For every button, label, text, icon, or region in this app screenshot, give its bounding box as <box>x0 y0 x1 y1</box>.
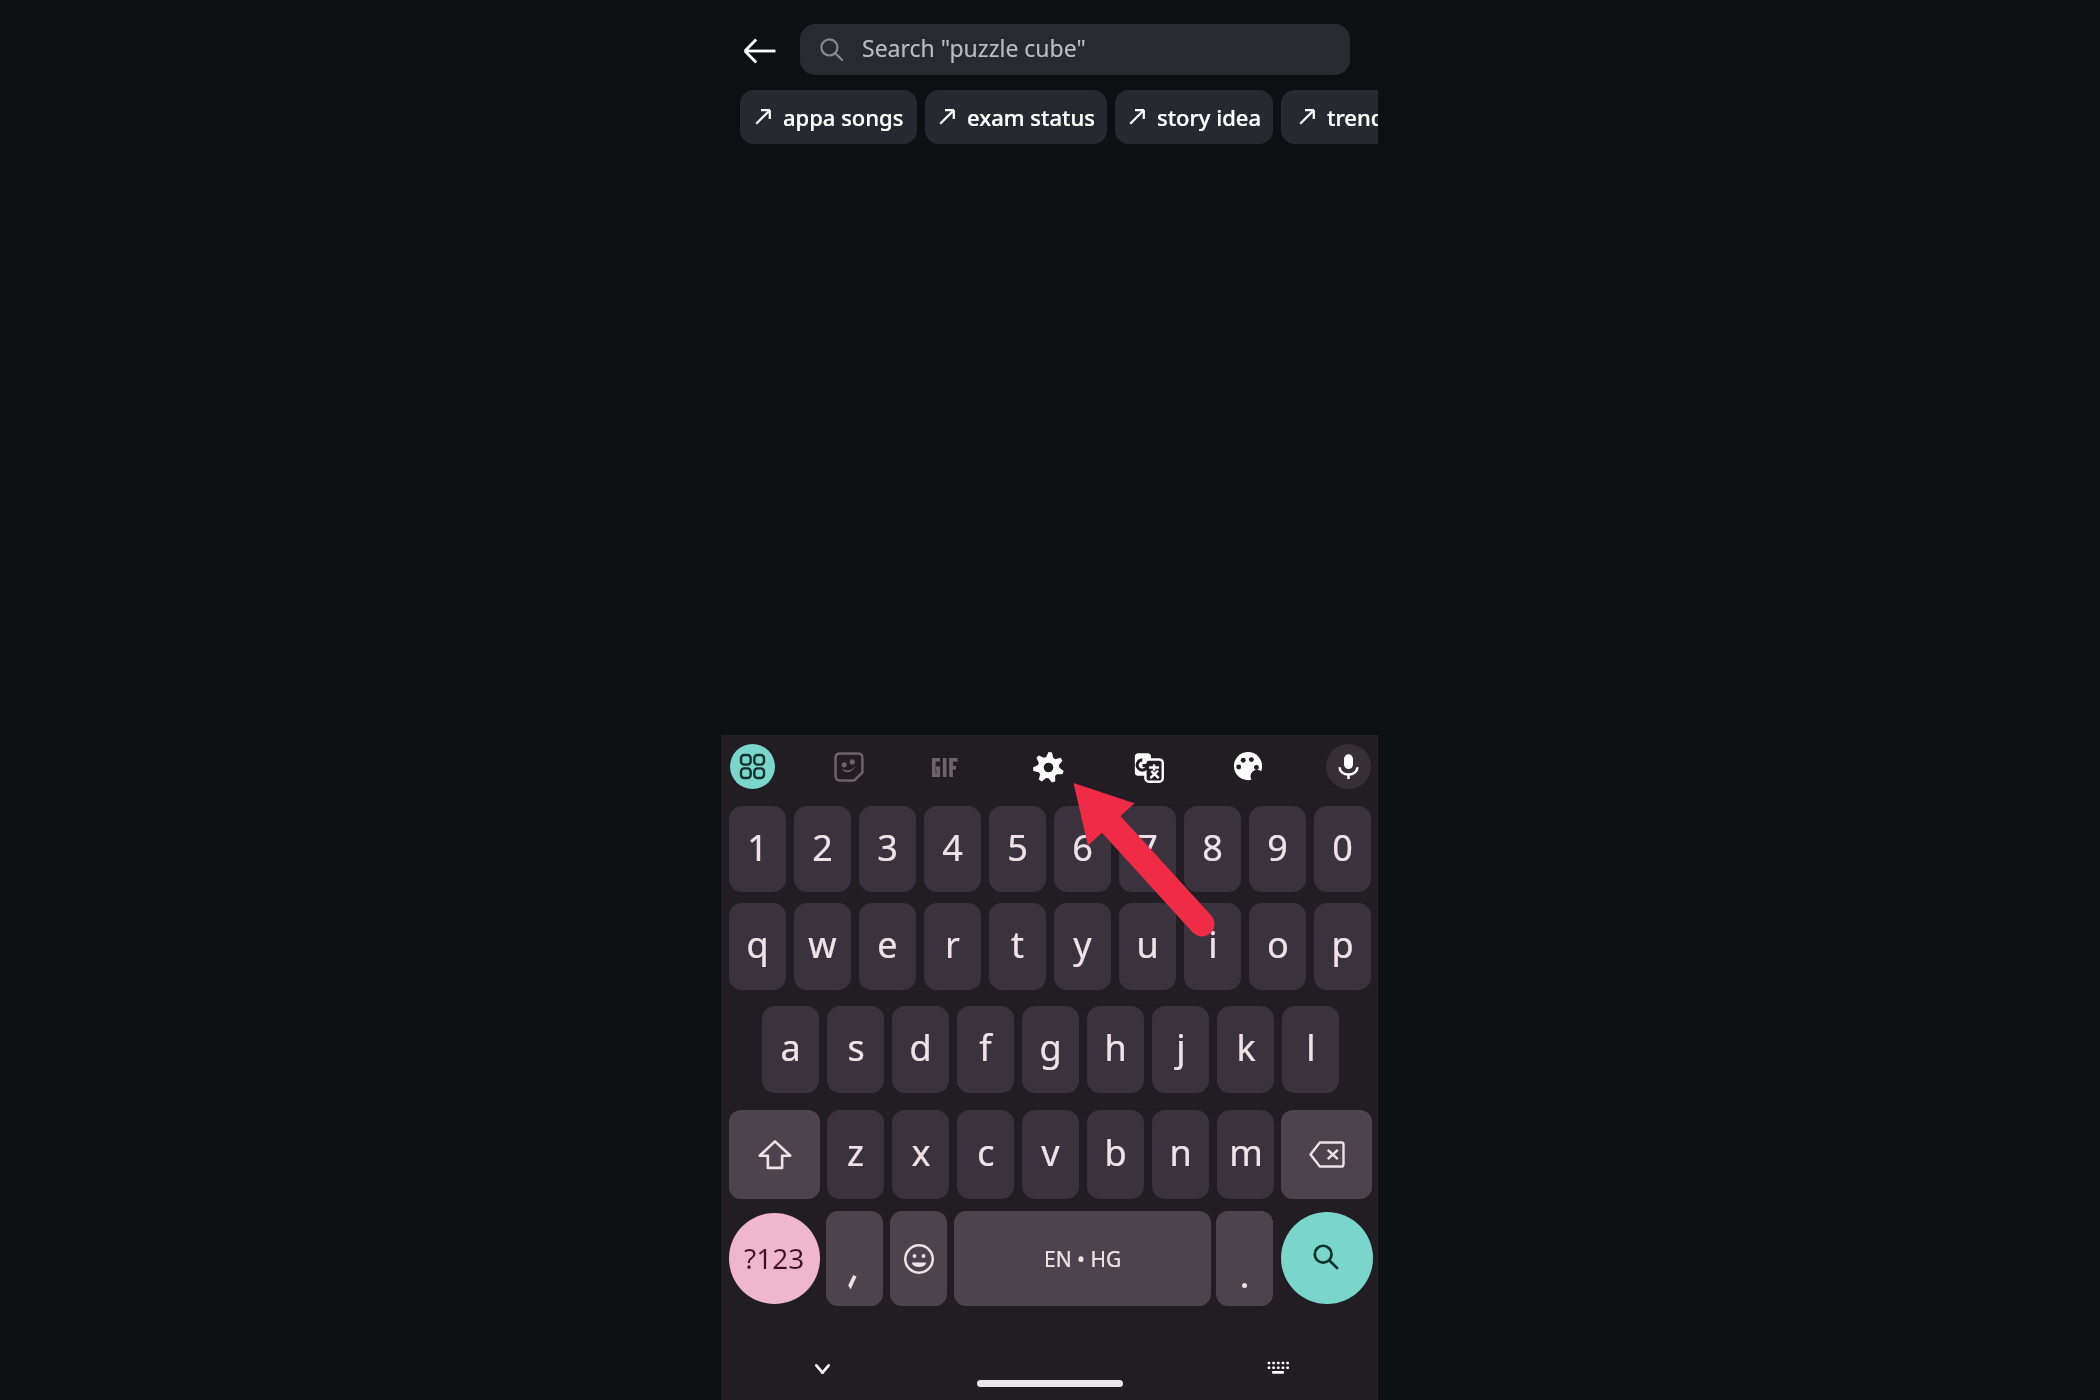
staticText: 4 <box>942 823 963 872</box>
button[interactable]: k <box>1217 1006 1274 1093</box>
button[interactable]: GIF <box>919 744 979 790</box>
button[interactable]: Search "puzzle cube" <box>800 24 1350 75</box>
button[interactable]: r <box>924 903 981 990</box>
button[interactable]: t <box>989 903 1046 990</box>
staticText: f <box>979 1023 992 1072</box>
staticText: 3 <box>877 823 898 872</box>
button[interactable]: EN • HG <box>954 1211 1211 1306</box>
button[interactable]: 2 <box>794 806 851 892</box>
staticText: z <box>847 1128 864 1177</box>
button[interactable]: Voice input <box>1326 744 1371 789</box>
staticText: c <box>977 1128 995 1177</box>
staticText: g <box>1039 1023 1062 1072</box>
staticText: Search "puzzle cube" <box>862 32 1086 63</box>
button[interactable]: x <box>892 1110 949 1199</box>
button[interactable]: Shift <box>729 1110 820 1199</box>
button[interactable]: 8 <box>1184 806 1241 892</box>
staticText: n <box>1169 1128 1192 1177</box>
staticText: 8 <box>1202 823 1223 872</box>
staticText: v <box>1041 1128 1060 1177</box>
staticText: d <box>909 1023 932 1072</box>
button[interactable]: trend <box>1281 90 1378 144</box>
button[interactable]: o <box>1249 903 1306 990</box>
staticText: 1 <box>747 823 768 872</box>
button[interactable]: Backspace <box>1281 1110 1372 1199</box>
button[interactable]: 0 <box>1314 806 1371 892</box>
staticText: i <box>1208 920 1218 969</box>
button[interactable]: 9 <box>1249 806 1306 892</box>
button[interactable]: m <box>1217 1110 1274 1199</box>
staticText: h <box>1104 1023 1127 1072</box>
button[interactable]: Back <box>735 26 785 76</box>
button[interactable]: e <box>859 903 916 990</box>
button[interactable]: c <box>957 1110 1014 1199</box>
button[interactable]: j <box>1152 1006 1209 1093</box>
button[interactable]: i <box>1184 903 1241 990</box>
staticText: l <box>1306 1023 1316 1072</box>
staticText: r <box>945 920 960 969</box>
staticText: 5 <box>1007 823 1028 872</box>
button[interactable]: ?123 <box>729 1213 820 1304</box>
staticText: q <box>746 920 769 969</box>
staticText: appa songs <box>783 102 904 132</box>
button[interactable]: d <box>892 1006 949 1093</box>
button[interactable]: Search <box>1281 1212 1373 1304</box>
button[interactable]: u <box>1119 903 1176 990</box>
button[interactable]: Translate <box>1125 744 1171 790</box>
button[interactable]: h <box>1087 1006 1144 1093</box>
staticText: e <box>877 920 898 969</box>
button[interactable]: f <box>957 1006 1014 1093</box>
button[interactable]: z <box>827 1110 884 1199</box>
button[interactable]: Apps <box>730 744 775 789</box>
staticText: 0 <box>1332 823 1353 872</box>
button[interactable]: Switch keyboard <box>1254 1344 1301 1391</box>
button[interactable]: Period <box>1216 1211 1273 1306</box>
button[interactable]: s <box>827 1006 884 1093</box>
button[interactable]: q <box>729 903 786 990</box>
button[interactable]: Settings <box>1025 744 1071 790</box>
button[interactable]: appa songs <box>740 90 917 144</box>
button[interactable]: n <box>1152 1110 1209 1199</box>
staticText: s <box>847 1023 865 1072</box>
button[interactable]: exam status <box>925 90 1107 144</box>
button[interactable]: 4 <box>924 806 981 892</box>
button[interactable]: 1 <box>729 806 786 892</box>
staticText: m <box>1229 1128 1263 1177</box>
staticText: x <box>911 1128 931 1177</box>
button[interactable]: b <box>1087 1110 1144 1199</box>
button[interactable]: Theme <box>1225 744 1271 790</box>
staticText: EN • HG <box>1044 1245 1122 1274</box>
button[interactable]: Stickers <box>826 744 872 790</box>
staticText: j <box>1176 1023 1186 1072</box>
button[interactable]: w <box>794 903 851 990</box>
staticText: y <box>1073 920 1092 969</box>
staticText: 9 <box>1267 823 1288 872</box>
button[interactable]: l <box>1282 1006 1339 1093</box>
staticText: 2 <box>812 823 833 872</box>
staticText: p <box>1331 920 1354 969</box>
staticText: 6 <box>1072 823 1093 872</box>
button[interactable]: 6 <box>1054 806 1111 892</box>
button[interactable]: Comma <box>826 1211 883 1306</box>
button[interactable]: g <box>1022 1006 1079 1093</box>
button[interactable]: y <box>1054 903 1111 990</box>
staticText: exam status <box>967 102 1095 132</box>
staticText: t <box>1011 920 1024 969</box>
button[interactable]: p <box>1314 903 1371 990</box>
button[interactable]: story idea <box>1115 90 1273 144</box>
staticText: story idea <box>1157 102 1261 132</box>
staticText: trend <box>1327 102 1378 132</box>
staticText: a <box>780 1023 801 1072</box>
staticText: b <box>1104 1128 1127 1177</box>
staticText: 7 <box>1137 823 1158 872</box>
button[interactable]: Hide keyboard <box>799 1345 846 1392</box>
button[interactable]: a <box>762 1006 819 1093</box>
button[interactable]: v <box>1022 1110 1079 1199</box>
staticText: ?123 <box>744 1239 805 1277</box>
button[interactable]: 7 <box>1119 806 1176 892</box>
button[interactable]: 5 <box>989 806 1046 892</box>
button[interactable]: 3 <box>859 806 916 892</box>
staticText: k <box>1236 1023 1256 1072</box>
staticText: o <box>1267 920 1289 969</box>
button[interactable]: Emoji <box>890 1211 947 1306</box>
